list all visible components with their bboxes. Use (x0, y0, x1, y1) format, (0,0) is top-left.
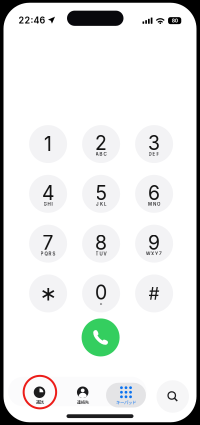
staticText: 通話 (35, 399, 43, 405)
staticText: # (149, 283, 160, 304)
staticText: 9 (148, 231, 160, 254)
button[interactable]: 2 (82, 125, 120, 163)
staticText: P Q R S (41, 251, 56, 256)
staticText: 4 (42, 181, 54, 205)
button[interactable]: 6 (135, 175, 173, 213)
button[interactable]: 通話 (19, 383, 59, 408)
staticText: 8 (95, 231, 107, 254)
staticText: 0 (95, 281, 107, 304)
button[interactable]: 8 (82, 225, 120, 263)
staticText: 連絡先 (77, 399, 89, 405)
button[interactable]: 7 (29, 225, 67, 263)
staticText: 3 (148, 131, 160, 155)
staticText: M N O (148, 201, 160, 207)
button[interactable]: ∗ (29, 274, 67, 312)
staticText: 2 (95, 131, 107, 155)
staticText: + (100, 301, 103, 306)
staticText: 5 (96, 181, 107, 205)
button[interactable]: 0 (82, 274, 120, 312)
staticText: 1 (44, 132, 52, 156)
staticText: 22:46 (18, 15, 45, 25)
button[interactable]: 3 (135, 125, 173, 163)
staticText: J K L (96, 201, 106, 207)
staticText: D E F (149, 152, 160, 157)
button[interactable]: キーパッド (106, 383, 146, 408)
staticText: A B C (96, 152, 107, 157)
button[interactable]: 連絡先 (63, 383, 103, 408)
button[interactable]: 4 (29, 175, 67, 213)
button[interactable]: Call (82, 318, 120, 356)
staticText: 6 (148, 181, 160, 205)
staticText: T U V (96, 251, 107, 256)
button[interactable]: 9 (135, 225, 173, 263)
button[interactable]: 5 (82, 175, 120, 213)
staticText: W X Y Z (146, 251, 162, 256)
staticText: キーパッド (116, 399, 136, 405)
staticText: ∗ (40, 281, 57, 305)
staticText: 80 (172, 18, 178, 24)
button[interactable]: 1 (29, 125, 67, 163)
button[interactable]: # (135, 274, 173, 312)
staticText: 7 (43, 231, 54, 254)
button[interactable]: Search (156, 380, 189, 413)
staticText: G H I (44, 201, 53, 207)
